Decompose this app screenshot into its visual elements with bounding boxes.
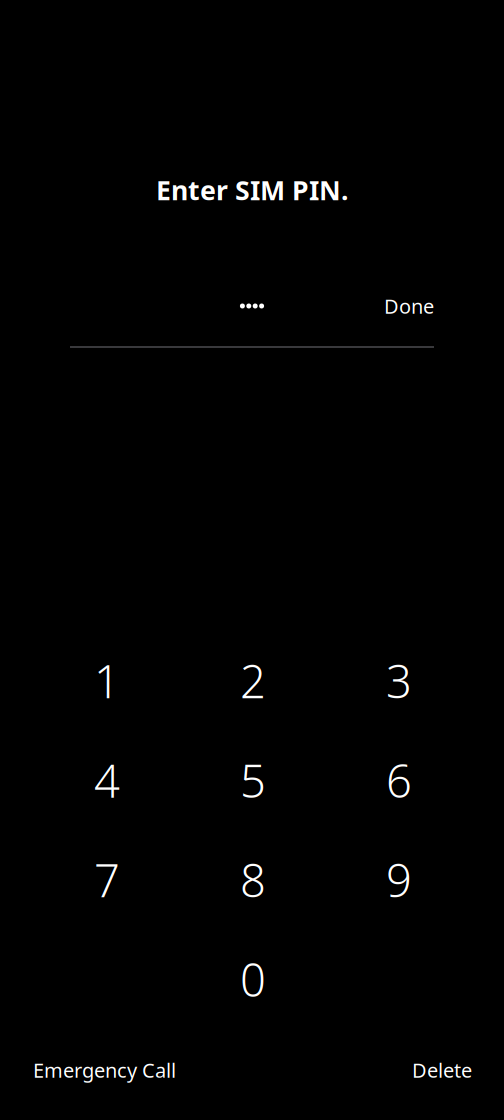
staticText: 4 [94, 750, 120, 810]
button[interactable]: 6 [326, 730, 472, 830]
staticText: 6 [386, 750, 412, 810]
staticText: 5 [240, 750, 266, 810]
staticText: 1 [94, 651, 120, 711]
button[interactable]: Delete [412, 1057, 472, 1083]
button[interactable]: Done [384, 293, 434, 319]
staticText: Emergency Call [33, 1057, 176, 1083]
button[interactable]: 4 digits entered [70, 295, 434, 317]
button[interactable]: 8 [180, 830, 326, 929]
staticText: Done [384, 293, 434, 319]
staticText: 3 [386, 651, 412, 711]
button[interactable]: 7 [34, 830, 180, 929]
button[interactable]: 4 [34, 730, 180, 830]
staticText: 8 [240, 850, 266, 910]
staticText: 2 [240, 651, 266, 711]
button[interactable]: 2 [180, 631, 326, 730]
button[interactable]: 9 [326, 830, 472, 929]
button[interactable]: 3 [326, 631, 472, 730]
staticText: 9 [386, 850, 412, 910]
button[interactable]: 1 [34, 631, 180, 730]
button[interactable]: 5 [180, 730, 326, 830]
staticText: 7 [94, 850, 120, 910]
staticText: Enter SIM PIN. [156, 172, 348, 208]
staticText: 0 [240, 949, 266, 1009]
button[interactable]: Emergency Call [33, 1057, 176, 1083]
button[interactable]: 0 [180, 929, 326, 1029]
staticText: Delete [412, 1057, 472, 1083]
